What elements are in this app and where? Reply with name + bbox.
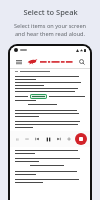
button[interactable]: Search	[77, 57, 86, 66]
staticText: Select to Speak	[23, 7, 78, 17]
button[interactable]: Next	[55, 135, 63, 143]
button[interactable]: Pause	[44, 135, 53, 144]
button[interactable]: Decrease speed	[23, 135, 31, 143]
button[interactable]: Previous	[33, 135, 41, 143]
button[interactable]: Drag handle	[13, 135, 21, 143]
button[interactable]: Increase speed	[65, 135, 73, 143]
staticText: Select items on your screen and hear the…	[5, 22, 95, 38]
button[interactable]: Stop	[75, 133, 87, 145]
button[interactable]	[30, 94, 47, 99]
button[interactable]: Open navigation menu	[14, 57, 23, 66]
